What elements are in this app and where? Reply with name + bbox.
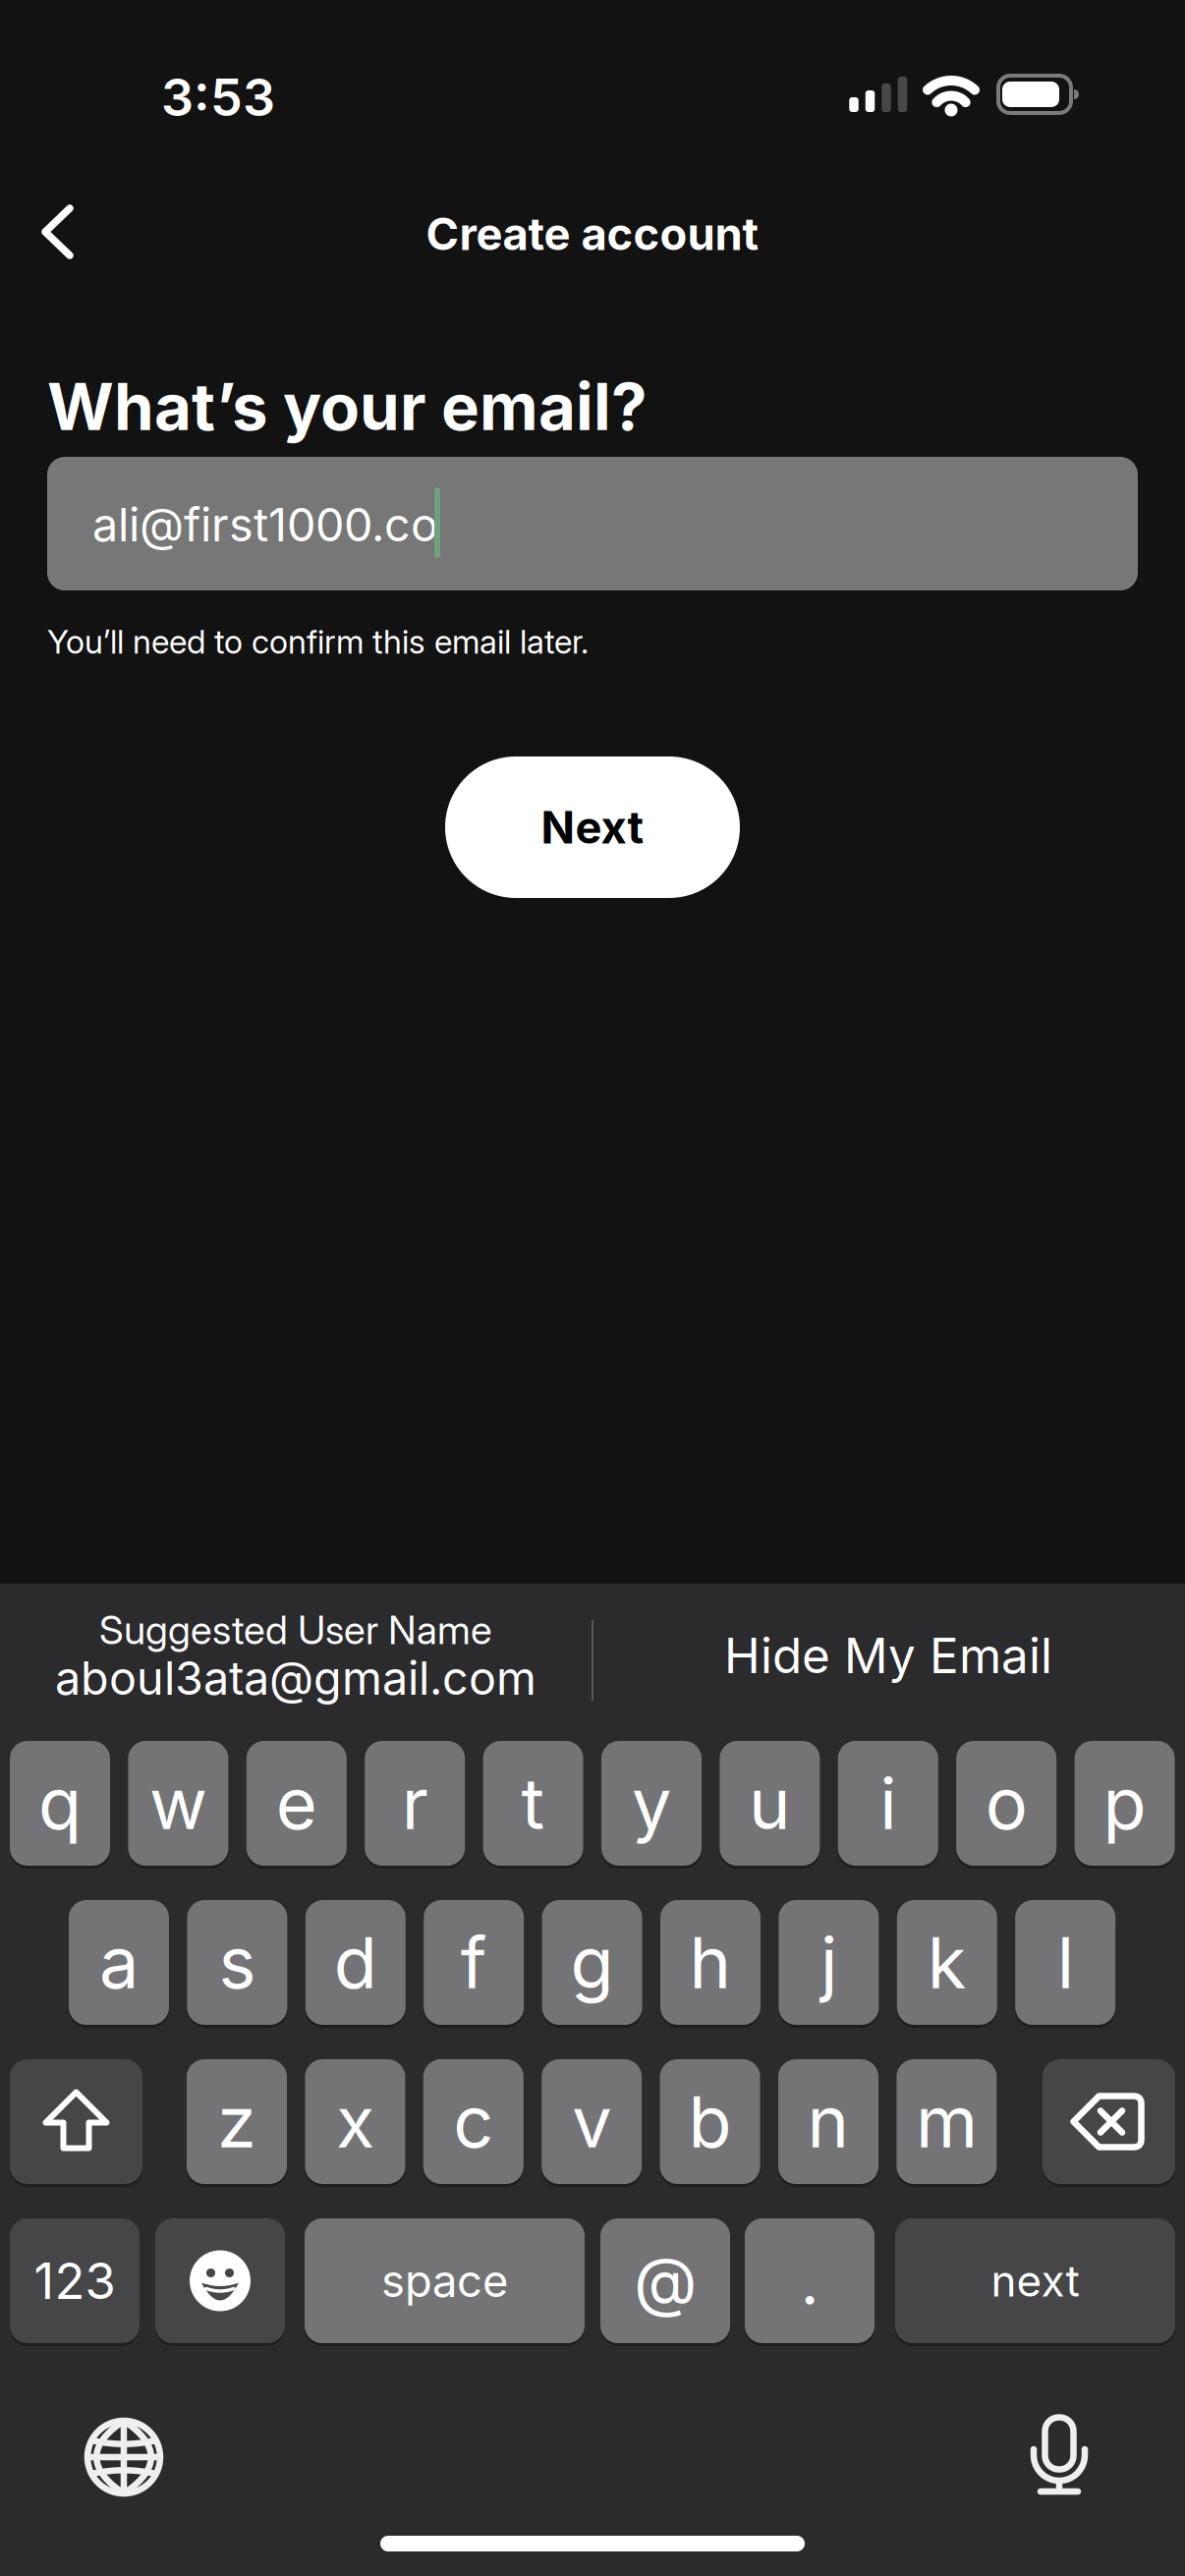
staticText: 3:53 — [161, 67, 275, 127]
staticText: t — [521, 1762, 545, 1845]
button[interactable]: Shift — [10, 2059, 142, 2184]
staticText: u — [749, 1762, 791, 1845]
staticText: 123 — [34, 2251, 115, 2310]
staticText: ali@first1000.co — [92, 498, 438, 552]
staticText: j — [820, 1921, 837, 2004]
staticText: What’s your email? — [47, 369, 648, 445]
button[interactable]: next — [895, 2218, 1175, 2343]
staticText: y — [632, 1762, 671, 1845]
button[interactable]: . — [745, 2218, 875, 2343]
button[interactable]: Hide My Email — [643, 1601, 1134, 1709]
button[interactable]: r — [365, 1741, 465, 1866]
staticText: r — [402, 1762, 428, 1845]
staticText: next — [991, 2255, 1079, 2306]
button[interactable]: i — [838, 1741, 938, 1866]
staticText: x — [336, 2080, 374, 2163]
button[interactable]: y — [601, 1741, 702, 1866]
button[interactable]: o — [956, 1741, 1056, 1866]
button[interactable]: w — [128, 1741, 228, 1866]
button[interactable]: x — [305, 2059, 405, 2184]
button[interactable]: 123 — [10, 2218, 140, 2343]
staticText: c — [453, 2080, 494, 2163]
button[interactable]: Back — [10, 185, 104, 279]
button[interactable]: m — [897, 2059, 997, 2184]
button[interactable]: space — [305, 2218, 585, 2343]
staticText: o — [985, 1762, 1027, 1845]
staticText: m — [916, 2080, 978, 2163]
button[interactable]: b — [660, 2059, 760, 2184]
staticText: b — [688, 2080, 732, 2163]
button[interactable]: Next keyboard — [65, 2398, 183, 2516]
button[interactable]: k — [897, 1900, 997, 2025]
button[interactable]: Delete — [1043, 2059, 1175, 2184]
staticText: aboul3ata@gmail.com — [55, 1651, 536, 1705]
staticText: n — [807, 2080, 849, 2163]
button[interactable]: u — [720, 1741, 820, 1866]
button[interactable]: s — [187, 1900, 287, 2025]
staticText: h — [689, 1921, 732, 2004]
button[interactable]: Next — [445, 756, 740, 898]
button[interactable]: n — [778, 2059, 878, 2184]
button[interactable]: q — [10, 1741, 110, 1866]
staticText: q — [38, 1762, 82, 1845]
button[interactable]: z — [187, 2059, 287, 2184]
staticText: Suggested User Name — [99, 1607, 492, 1653]
button[interactable]: a — [69, 1900, 169, 2025]
button[interactable]: Suggested User Name — [11, 1593, 581, 1720]
staticText: f — [461, 1921, 487, 2004]
staticText: l — [1057, 1921, 1074, 2004]
button[interactable]: d — [305, 1900, 406, 2025]
button[interactable]: f — [424, 1900, 524, 2025]
staticText: space — [381, 2255, 508, 2307]
staticText: k — [927, 1921, 967, 2004]
staticText: i — [880, 1762, 896, 1845]
staticText: . — [800, 2242, 819, 2319]
staticText: d — [334, 1921, 377, 2004]
button[interactable]: g — [542, 1900, 642, 2025]
button[interactable]: Emoji — [155, 2218, 285, 2343]
staticText: e — [276, 1762, 317, 1845]
button[interactable]: t — [483, 1741, 583, 1866]
staticText: Create account — [426, 208, 759, 260]
staticText: z — [217, 2080, 256, 2163]
staticText: a — [99, 1921, 139, 2004]
button[interactable]: j — [779, 1900, 879, 2025]
button[interactable]: e — [246, 1741, 347, 1866]
staticText: p — [1103, 1762, 1146, 1845]
staticText: v — [572, 2080, 611, 2163]
button[interactable]: v — [542, 2059, 642, 2184]
staticText: You’ll need to confirm this email later. — [47, 622, 589, 661]
staticText: Next — [541, 801, 644, 854]
button[interactable]: c — [423, 2059, 524, 2184]
staticText: w — [149, 1762, 207, 1845]
staticText: Hide My Email — [724, 1627, 1052, 1684]
button[interactable]: h — [660, 1900, 761, 2025]
button[interactable]: l — [1015, 1900, 1115, 2025]
staticText: s — [219, 1921, 256, 2004]
button[interactable]: @ — [600, 2218, 730, 2343]
staticText: @ — [634, 2242, 697, 2319]
button[interactable]: Dictation — [1000, 2397, 1118, 2515]
staticText: g — [570, 1921, 614, 2004]
button[interactable]: p — [1075, 1741, 1175, 1866]
